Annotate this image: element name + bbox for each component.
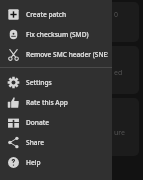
other: Help [7,156,20,169]
staticText: Fix checksum (SMD) [26,30,89,39]
staticText: Create patch [26,10,67,19]
other: Rate this App [7,96,20,109]
other: Settings [7,76,20,89]
other: Donate [7,116,20,129]
other: Create patch [7,8,20,21]
button[interactable]: Remove SMC header [0,44,112,64]
button[interactable]: Rate this App [0,92,112,112]
staticText: Donate [26,118,50,127]
other: Remove SMC header [7,48,20,61]
staticText: 0 [114,10,119,20]
other: Share [7,136,20,149]
staticText: Share [26,138,44,147]
button[interactable]: Fix checksum [0,24,112,44]
staticText: Help [26,158,41,167]
staticText: ure [114,128,126,138]
staticText: Rate this App [26,98,68,107]
other: Fix checksum [7,28,20,41]
staticText: Remove SMC header (SNES) [26,50,108,59]
staticText: ed [114,68,123,78]
button[interactable]: Settings [0,72,112,92]
button[interactable]: Help [0,152,112,172]
button[interactable]: Share [0,132,112,152]
button[interactable]: Create patch [0,4,112,24]
button[interactable]: Donate [0,112,112,132]
staticText: Settings [26,78,52,87]
